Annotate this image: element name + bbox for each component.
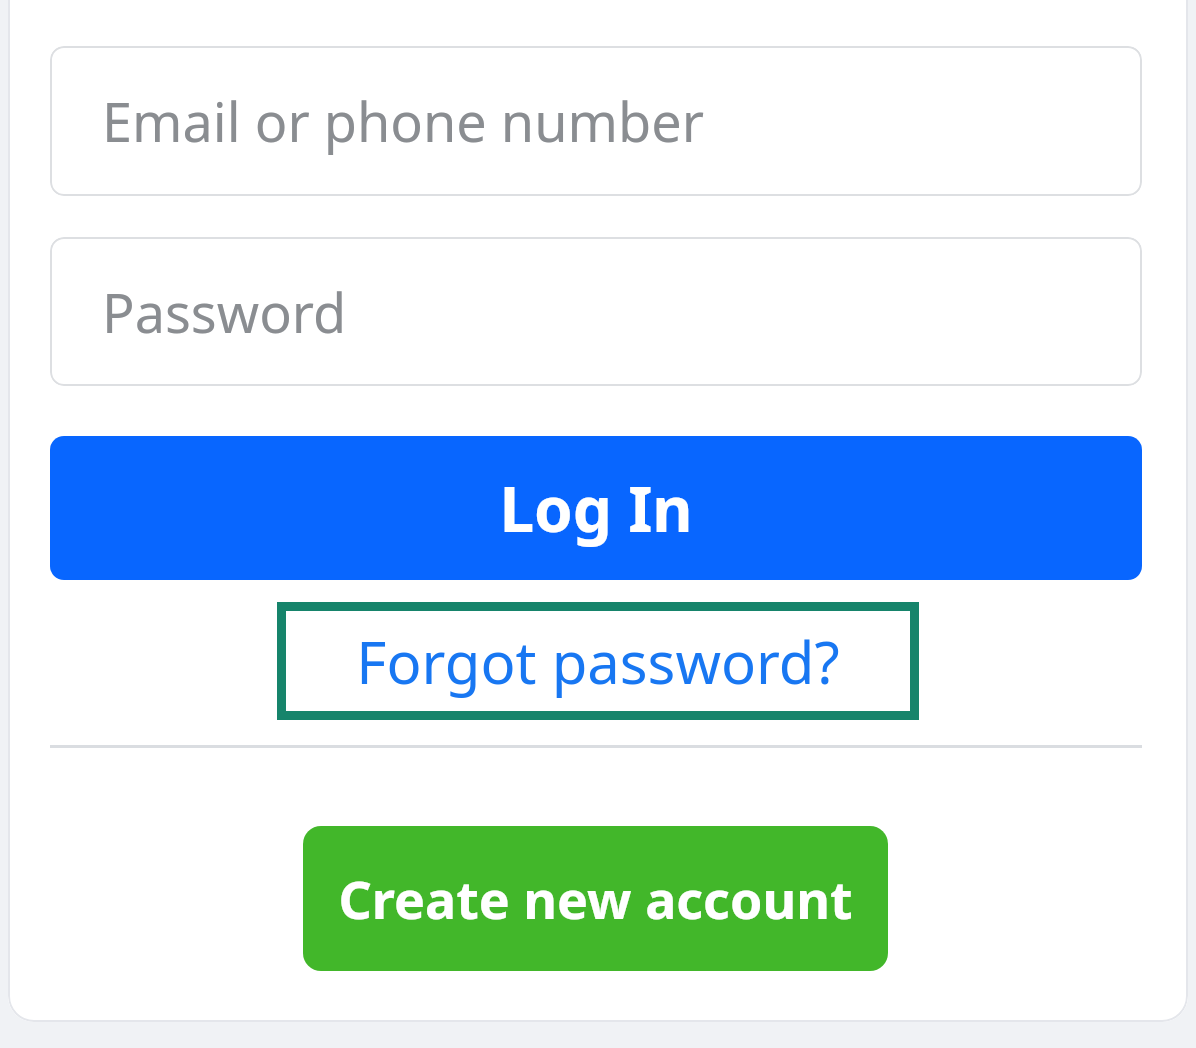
staticText: Email or phone number bbox=[102, 84, 705, 158]
button[interactable]: Forgot password? bbox=[277, 602, 919, 720]
button[interactable]: Email or phone number bbox=[50, 46, 1142, 196]
staticText: Password bbox=[102, 275, 347, 349]
staticText: Log In bbox=[499, 466, 693, 550]
staticText: Forgot password? bbox=[356, 622, 840, 701]
button[interactable]: Log In bbox=[50, 436, 1142, 580]
button[interactable]: Password bbox=[50, 237, 1142, 386]
button[interactable]: Create new account bbox=[303, 826, 888, 971]
staticText: Create new account bbox=[338, 863, 853, 934]
